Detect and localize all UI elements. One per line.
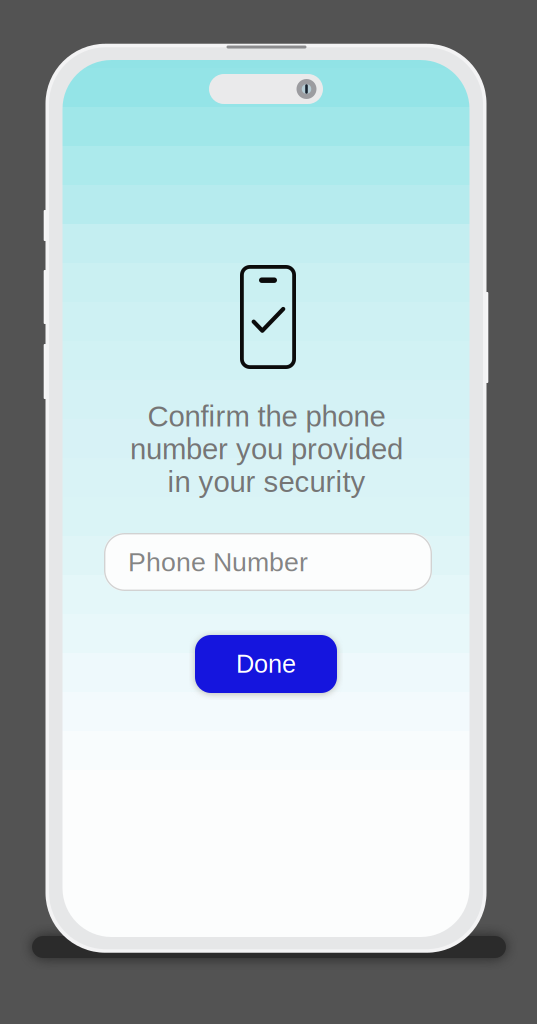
staticText: Done — [236, 650, 296, 678]
button[interactable]: Done — [195, 635, 337, 693]
staticText: Phone Number — [128, 547, 308, 577]
staticText: number you provided — [130, 433, 403, 465]
staticText: in your security — [167, 465, 365, 498]
button[interactable]: Phone Number — [104, 533, 432, 591]
staticText: Confirm the phone — [147, 400, 385, 433]
